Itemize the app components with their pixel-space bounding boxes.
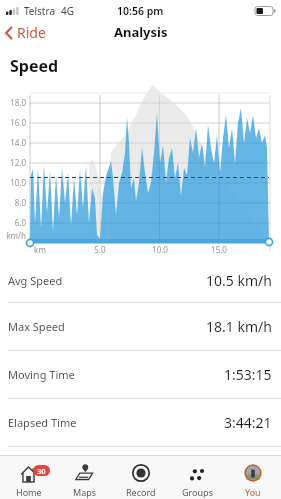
staticText: 5.0 <box>85 244 115 255</box>
staticText: 14.0 <box>0 137 26 148</box>
staticText: 12.0 <box>0 157 26 168</box>
staticText: 10.5 km/h <box>206 271 272 290</box>
staticText: 15.0 <box>204 244 234 255</box>
button[interactable]: Moving Time <box>0 351 281 398</box>
staticText: km <box>25 244 55 255</box>
button[interactable]: Max Speed <box>0 303 281 350</box>
button[interactable]: Ride <box>4 23 46 42</box>
button[interactable]: Avg Speed <box>0 258 281 302</box>
button[interactable]: Elapsed Time <box>0 399 281 446</box>
button[interactable]: Record <box>113 456 169 499</box>
staticText: Record <box>126 486 156 498</box>
button[interactable]: Maps <box>57 456 113 499</box>
staticText: Moving Time <box>8 367 75 382</box>
staticText: Max Speed <box>8 319 65 334</box>
staticText: Groups <box>182 486 213 498</box>
staticText: km/h <box>0 230 26 241</box>
staticText: 10.0 <box>0 177 26 188</box>
staticText: 3:44:21 <box>224 413 272 432</box>
staticText: Speed <box>10 55 59 77</box>
staticText: Analysis <box>114 23 168 41</box>
staticText: 4G <box>61 4 74 18</box>
staticText: You <box>245 486 261 498</box>
button[interactable]: You <box>225 456 281 499</box>
staticText: 18.1 km/h <box>206 317 272 336</box>
staticText: 10:56 pm <box>117 4 164 18</box>
button[interactable]: 30 <box>0 456 57 499</box>
button[interactable]: Groups <box>169 456 225 499</box>
staticText: 16.0 <box>0 117 26 128</box>
staticText: Avg Speed <box>8 273 63 288</box>
staticText: 6.0 <box>0 217 26 228</box>
staticText: 30 <box>37 466 46 476</box>
staticText: 1:53:15 <box>224 365 272 384</box>
staticText: Telstra <box>24 4 56 18</box>
staticText: 10.0 <box>145 244 175 255</box>
staticText: Maps <box>73 486 97 498</box>
staticText: 18.0 <box>0 97 26 108</box>
staticText: 8.0 <box>0 197 26 208</box>
staticText: Ride <box>17 23 46 42</box>
staticText: Elapsed Time <box>8 415 77 430</box>
staticText: Home <box>16 486 42 498</box>
